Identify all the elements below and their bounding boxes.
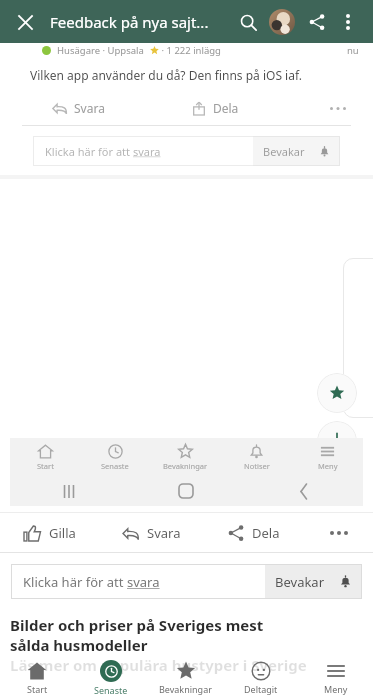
staticText: svara: [127, 573, 160, 591]
button[interactable]: Dela: [192, 100, 239, 116]
button[interactable]: Bevakningar: [148, 652, 223, 700]
staticText: Gilla: [49, 524, 76, 542]
staticText: Svara: [74, 100, 105, 116]
staticText: Klicka här för att: [23, 573, 127, 591]
button[interactable]: Scroll down: [317, 421, 357, 461]
staticText: Dela: [252, 524, 280, 542]
staticText: Bevakningar: [159, 683, 212, 695]
button[interactable]: Meny: [292, 438, 363, 476]
staticText: · 1 222 inlägg: [159, 44, 221, 57]
staticText: Bevakar: [263, 144, 305, 159]
staticText: Meny: [318, 461, 338, 471]
button[interactable]: Dela: [228, 524, 280, 542]
button[interactable]: Start: [0, 652, 74, 700]
button[interactable]: Bevakningar: [150, 438, 221, 476]
button[interactable]: Deltagit: [223, 652, 298, 700]
button[interactable]: Meny: [298, 652, 373, 700]
button[interactable]: Profile: [269, 9, 295, 35]
staticText: Bevakar: [275, 573, 325, 591]
button[interactable]: Senaste: [74, 652, 148, 700]
staticText: Vilken app använder du då? Den finns på …: [30, 67, 303, 83]
button[interactable]: Share: [303, 8, 331, 36]
staticText: Senaste: [94, 684, 128, 696]
button[interactable]: Klicka här för att: [33, 136, 340, 166]
button[interactable]: Bevakar: [263, 136, 330, 166]
button[interactable]: Senaste: [80, 438, 150, 476]
staticText: Senaste: [101, 461, 129, 471]
button[interactable]: Notiser: [221, 438, 292, 476]
button[interactable]: Search: [233, 7, 263, 37]
staticText: nu: [347, 44, 359, 57]
staticText: Start: [27, 683, 48, 695]
button[interactable]: Gilla: [24, 524, 76, 542]
staticText: Feedback på nya sajt...: [50, 12, 233, 32]
button[interactable]: Favorite: [317, 373, 357, 413]
staticText: Husägare · Uppsala: [57, 44, 144, 57]
staticText: Notiser: [244, 461, 270, 471]
button[interactable]: Bevakar: [275, 564, 352, 599]
staticText: Dela: [213, 100, 239, 116]
button[interactable]: Svara: [52, 100, 105, 116]
staticText: svara: [133, 144, 161, 159]
staticText: Bilder och priser på Sveriges mest sålda…: [10, 615, 307, 675]
button[interactable]: Start: [10, 438, 80, 476]
button[interactable]: More options: [327, 521, 351, 545]
button[interactable]: Klicka här för att: [11, 564, 362, 599]
staticText: Start: [37, 461, 54, 471]
staticText: Bevakningar: [163, 461, 208, 471]
button[interactable]: Close: [12, 9, 38, 35]
staticText: Svara: [147, 524, 181, 542]
button[interactable]: More: [327, 97, 349, 119]
button[interactable]: More options: [335, 9, 361, 35]
staticText: Klicka här för att: [45, 144, 133, 159]
staticText: Deltagit: [244, 683, 278, 695]
staticText: Meny: [324, 683, 348, 695]
button[interactable]: Svara: [122, 524, 181, 542]
